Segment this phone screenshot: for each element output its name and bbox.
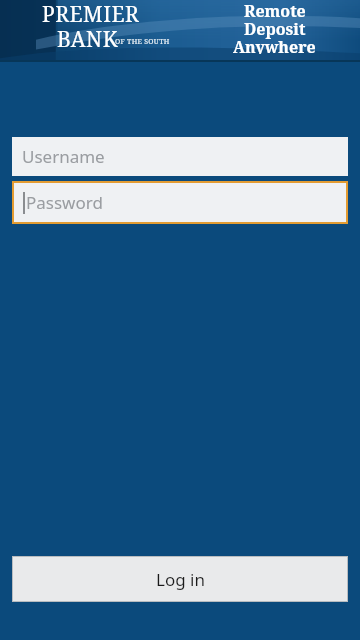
- staticText: Log in: [156, 568, 205, 591]
- staticText: Anywhere: [233, 36, 316, 54]
- staticText: PREMIER: [42, 0, 140, 29]
- staticText: Username: [22, 145, 105, 168]
- button[interactable]: Log in: [12, 556, 348, 602]
- button[interactable]: Password: [14, 183, 346, 222]
- button[interactable]: Username: [12, 137, 348, 176]
- staticText: OF THE SOUTH: [115, 37, 170, 47]
- staticText: Deposit: [244, 18, 306, 40]
- staticText: BANK: [57, 25, 118, 54]
- staticText: Password: [26, 191, 103, 214]
- staticText: Remote: [244, 0, 306, 22]
